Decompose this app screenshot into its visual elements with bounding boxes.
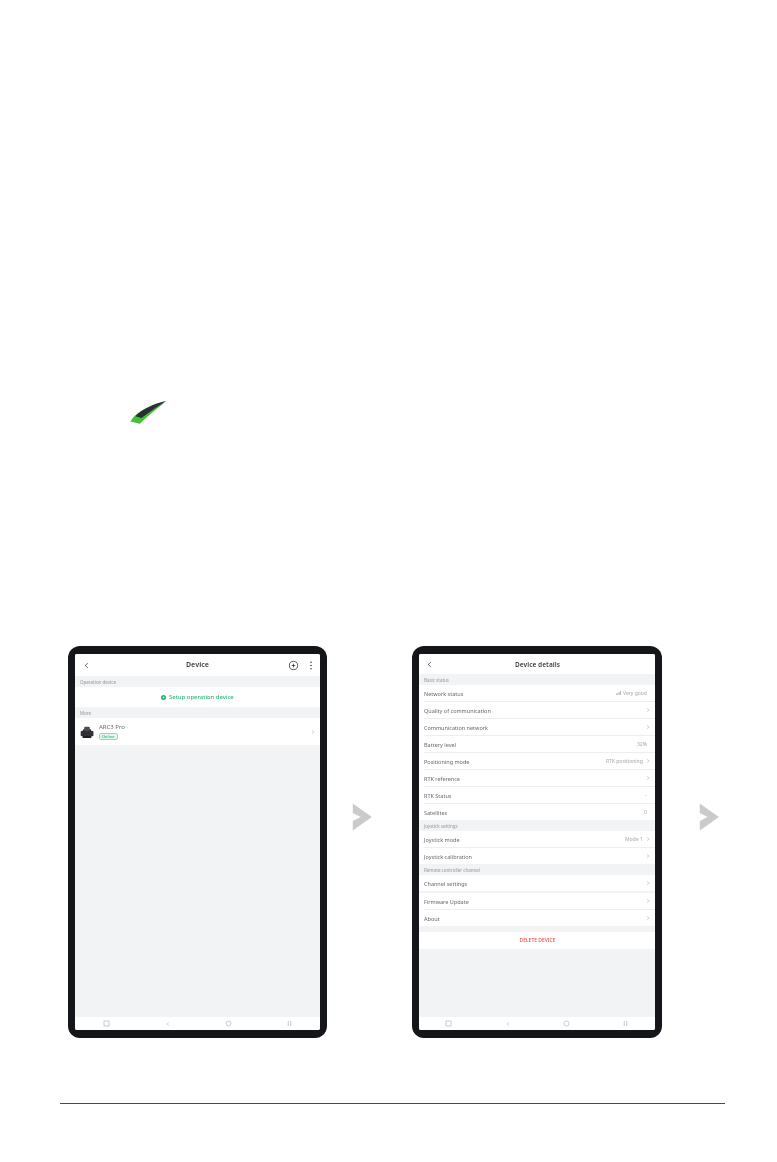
staticText: About [424,915,440,922]
button[interactable]: Battery level [419,736,655,752]
button[interactable]: Recent apps [596,1017,655,1030]
button[interactable]: RTK Status [419,787,655,803]
button[interactable]: DELETE DEVICE [419,932,655,949]
staticText: Joystick calibration [424,853,472,860]
button[interactable]: Home [198,1017,259,1030]
staticText: - [645,792,647,799]
button[interactable]: Positioning mode [419,753,655,769]
staticText: Mode 1 [625,836,643,843]
button[interactable]: Quality of communication [419,702,655,718]
button[interactable]: Communication network [419,719,655,735]
button[interactable]: Joystick mode [419,831,655,847]
staticText: Network status [424,690,464,697]
staticText: Remote controller channel [424,867,480,873]
button[interactable]: Home [537,1017,596,1030]
staticText: Quality of communication [424,707,491,714]
staticText: Channel settings [424,880,468,887]
staticText: Satellites [424,809,448,816]
button[interactable]: About [419,910,655,926]
staticText: RTK Status [424,792,452,799]
staticText: Joystick settings [424,823,458,829]
staticText: Online [102,734,115,739]
staticText: RTK reference [424,775,460,782]
staticText: Joystick mode [424,836,460,843]
button[interactable]: ARC3 Pro [75,718,320,745]
staticText: Operation device [80,679,116,685]
staticText: Communication network [424,724,488,731]
button[interactable]: Recent apps [259,1017,320,1030]
button[interactable]: Joystick calibration [419,848,655,864]
button[interactable]: Back [78,657,94,673]
button[interactable]: Setup operation device [75,687,320,707]
button[interactable]: Firmware Update [419,893,655,909]
staticText: Basic status [424,677,449,683]
staticText: Setup operation device [169,693,234,701]
button[interactable]: Satellites [419,804,655,820]
staticText: Device details [515,660,560,669]
staticText: Very good [623,690,647,697]
button[interactable]: Network status [419,685,655,701]
staticText: Battery level [424,741,456,748]
staticText: ARC3 Pro [99,723,125,731]
button[interactable]: Add device [286,658,300,672]
staticText: More [80,710,92,716]
button[interactable]: RTK reference [419,770,655,786]
staticText: Positioning mode [424,758,470,765]
staticText: RTK positioning [606,758,643,765]
staticText: 32% [637,741,647,748]
staticText: DELETE DEVICE [519,937,556,944]
button[interactable]: Screenshot [75,1017,137,1030]
button[interactable]: More options [305,659,317,671]
staticText: 0 [644,809,647,816]
button[interactable]: Back [422,657,437,672]
button[interactable]: Screenshot [419,1017,478,1030]
button[interactable]: Channel settings [419,875,655,891]
staticText: Firmware Update [424,898,469,905]
staticText: Device [186,660,210,670]
